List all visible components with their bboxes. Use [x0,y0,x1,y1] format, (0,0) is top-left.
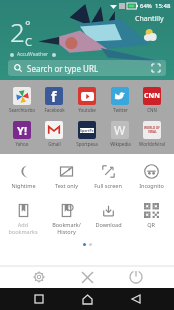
staticText: W [114,122,126,138]
staticText: Text only [55,182,78,189]
button[interactable]: Bookmark/ History [46,201,86,237]
staticText: Gmail [48,141,61,147]
button[interactable]: Text only [46,162,86,191]
staticText: ° [25,16,31,34]
button[interactable]: CNN [137,86,167,114]
button[interactable]: Full screen [88,162,128,191]
staticText: 64% [140,2,152,10]
staticText: CNN [147,107,157,113]
staticText: Wikipedia [110,141,131,147]
button[interactable]: Search or type URL [8,60,166,76]
button[interactable]: Nightime [3,162,43,191]
staticText: Youtube [78,107,96,113]
staticText: AccuWeather [17,51,49,58]
staticText: Sportpesa [76,141,98,147]
staticText: Add bookmarks [3,221,43,235]
staticText: QR [147,221,155,228]
other: Scan [152,64,160,72]
button[interactable]: QR [131,201,171,230]
button[interactable]: Home [77,289,97,309]
button[interactable]: Incognito [131,162,171,191]
staticText: Bookmark/ History [52,221,81,235]
button[interactable]: Settings [29,267,49,287]
button[interactable]: Youtube [72,86,102,114]
button[interactable]: W [105,120,135,148]
staticText: 15:48 [155,2,171,10]
button[interactable]: Searchturbo [7,86,37,114]
staticText: Full screen [94,182,122,189]
staticText: Searchturbo [9,107,35,113]
button[interactable]: SportPesa [72,120,102,148]
button[interactable]: WORLD OF [137,120,167,148]
staticText: C [25,34,32,49]
button[interactable]: Download [88,201,128,230]
staticText: WORLD OF [144,126,160,130]
button[interactable]: Back [126,289,146,309]
staticText: Chantilly [135,14,164,24]
staticText: Yahoo [15,141,29,147]
button[interactable]: Close [77,267,97,287]
button[interactable]: Twitter [105,86,135,114]
staticText: Nightime [11,182,36,189]
button[interactable]: Exit [126,267,146,287]
staticText: Twitter [113,107,128,113]
staticText: VIRAL [148,130,157,134]
staticText: Worldofviral [139,141,165,147]
button[interactable]: Recents [29,289,49,309]
button[interactable]: Gmail [39,120,69,148]
staticText: Download [95,221,122,228]
button[interactable]: Y! [7,120,37,148]
staticText: CNN [144,91,160,101]
staticText: Facebook [44,107,65,113]
staticText: 2 [10,14,25,49]
button[interactable]: f [39,86,69,114]
staticText: Y! [17,123,27,138]
button[interactable]: Add bookmarks [3,201,43,237]
staticText: Incognito [139,182,164,189]
staticText: f [51,87,57,105]
staticText: Search or type URL [27,63,99,74]
staticText: SportPesa [80,128,94,133]
